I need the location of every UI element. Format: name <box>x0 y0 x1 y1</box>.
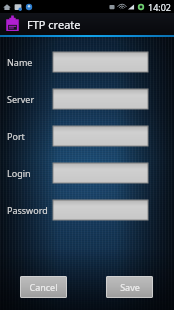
button[interactable] <box>53 200 148 220</box>
button[interactable]: Save <box>106 276 153 298</box>
button[interactable] <box>53 52 148 72</box>
button[interactable] <box>53 163 148 183</box>
staticText: 14:02 <box>148 1 172 13</box>
button[interactable]: Cancel <box>20 276 67 298</box>
button[interactable] <box>53 126 148 146</box>
staticText: Port <box>7 130 25 142</box>
button[interactable]: FTP create app icon <box>0 13 174 35</box>
button[interactable] <box>53 89 148 109</box>
other: FTP create app icon <box>3 15 22 34</box>
staticText: Server <box>7 93 35 105</box>
staticText: FTP create <box>27 17 81 32</box>
staticText: Password <box>7 204 48 216</box>
staticText: Cancel <box>29 281 58 293</box>
staticText: Login <box>7 167 31 179</box>
staticText: Name <box>7 56 33 68</box>
staticText: Save <box>120 281 140 293</box>
